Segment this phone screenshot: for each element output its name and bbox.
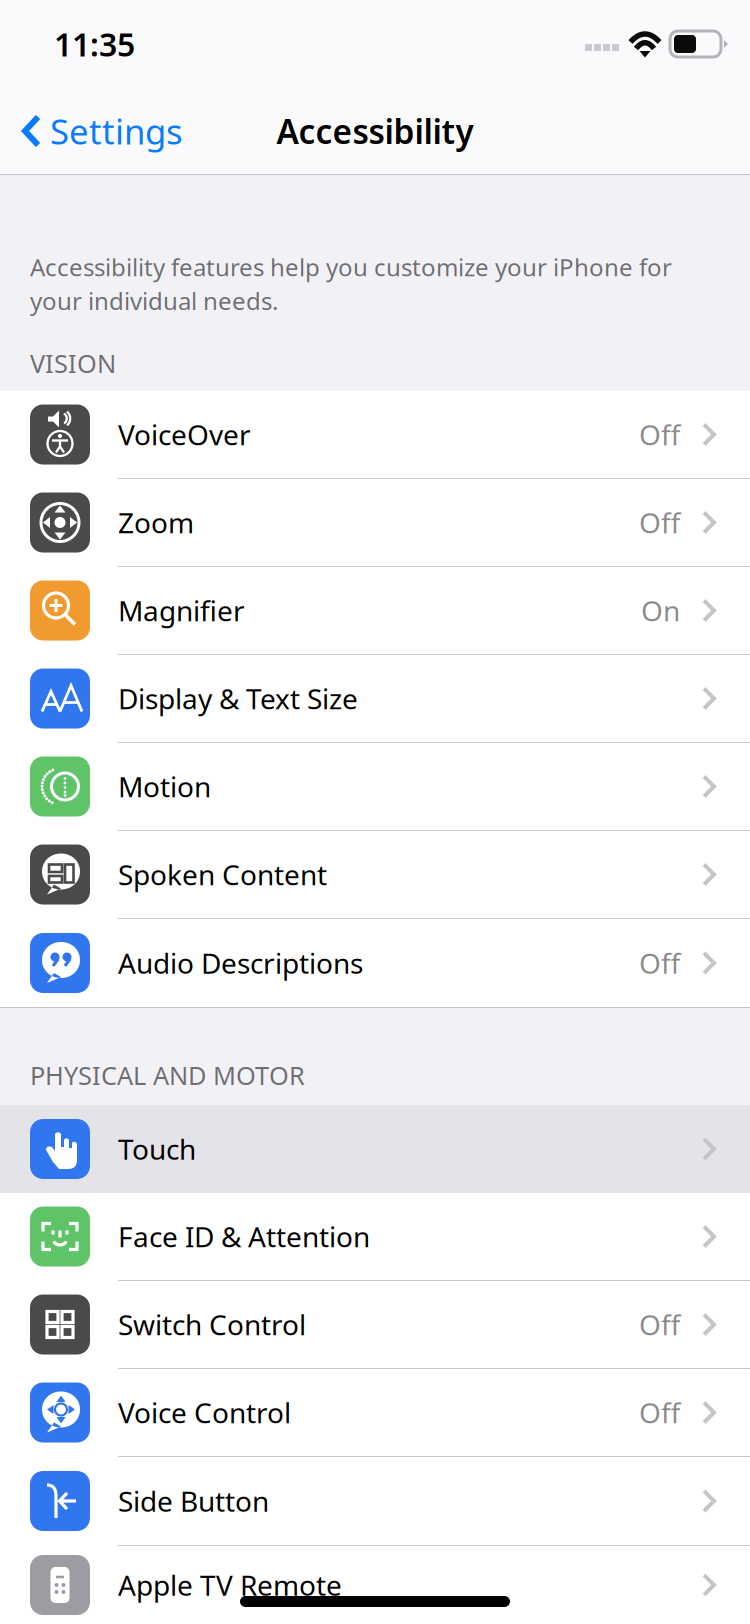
staticText: Apple TV Remote xyxy=(118,1566,342,1604)
staticText: Voice Control xyxy=(118,1394,291,1431)
staticText: Off xyxy=(639,1394,680,1431)
staticText: Off xyxy=(639,504,680,541)
button[interactable]: Zoom xyxy=(0,479,750,567)
staticText: Side Button xyxy=(118,1482,269,1520)
button[interactable]: Motion xyxy=(0,743,750,831)
button[interactable]: Side Button xyxy=(0,1457,750,1545)
button[interactable]: Settings xyxy=(0,88,183,174)
button[interactable]: Spoken Content xyxy=(0,831,750,919)
staticText: 11:35 xyxy=(54,23,135,65)
staticText: Zoom xyxy=(118,504,194,541)
button[interactable]: Touch xyxy=(0,1105,750,1193)
button[interactable]: Apple TV Remote xyxy=(0,1545,750,1624)
staticText: Motion xyxy=(118,768,211,805)
button[interactable]: Audio Descriptions xyxy=(0,919,750,1007)
staticText: Display & Text Size xyxy=(118,680,358,717)
staticText: Off xyxy=(639,1306,680,1343)
staticText: Face ID & Attention xyxy=(118,1218,370,1255)
staticText: Accessibility xyxy=(276,109,473,153)
button[interactable]: Magnifier xyxy=(0,567,750,655)
staticText: Switch Control xyxy=(118,1306,306,1343)
staticText: Off xyxy=(639,944,680,982)
button[interactable]: Voice Control xyxy=(0,1369,750,1457)
staticText: Off xyxy=(639,416,680,453)
button[interactable]: Switch Control xyxy=(0,1281,750,1369)
button[interactable]: VoiceOver xyxy=(0,391,750,479)
button[interactable]: Display & Text Size xyxy=(0,655,750,743)
staticText: your individual needs. xyxy=(30,285,278,317)
staticText: Settings xyxy=(50,108,183,154)
staticText: Audio Descriptions xyxy=(118,944,363,982)
button[interactable]: Face ID & Attention xyxy=(0,1193,750,1281)
staticText: On xyxy=(641,592,680,629)
staticText: VISION xyxy=(30,346,116,380)
staticText: Accessibility features help you customiz… xyxy=(30,251,672,283)
staticText: Magnifier xyxy=(118,592,245,629)
staticText: PHYSICAL AND MOTOR xyxy=(30,1058,305,1092)
staticText: Touch xyxy=(118,1130,196,1168)
staticText: VoiceOver xyxy=(118,416,251,453)
staticText: Spoken Content xyxy=(118,856,327,893)
